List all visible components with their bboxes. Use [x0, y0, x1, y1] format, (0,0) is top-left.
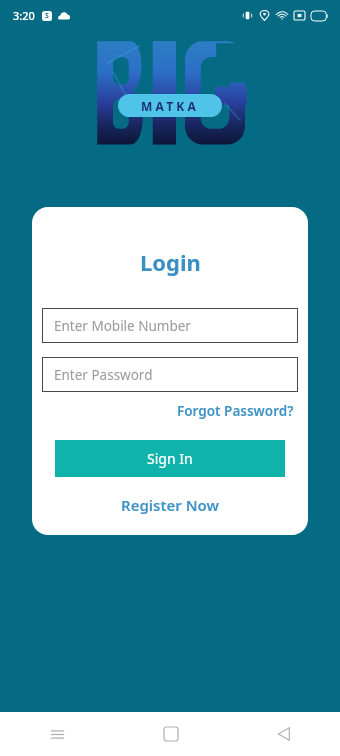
button[interactable]: Sign In [55, 440, 285, 477]
button[interactable]: Back [227, 712, 340, 756]
staticText: Sign In [147, 449, 193, 468]
button[interactable]: Register Now [117, 493, 224, 517]
button[interactable]: Enter Password [42, 357, 298, 392]
button[interactable]: Forgot Password? [175, 400, 296, 422]
button[interactable]: Home [114, 712, 227, 756]
button[interactable]: Enter Mobile Number [42, 308, 298, 343]
button[interactable]: Recent apps [0, 712, 114, 756]
staticText: Enter Password [54, 366, 153, 384]
staticText: Enter Mobile Number [54, 317, 191, 335]
staticText: Login [140, 247, 201, 277]
staticText: MATKA [141, 98, 199, 114]
staticText: S [45, 11, 49, 21]
staticText: 3:20 [13, 8, 35, 23]
